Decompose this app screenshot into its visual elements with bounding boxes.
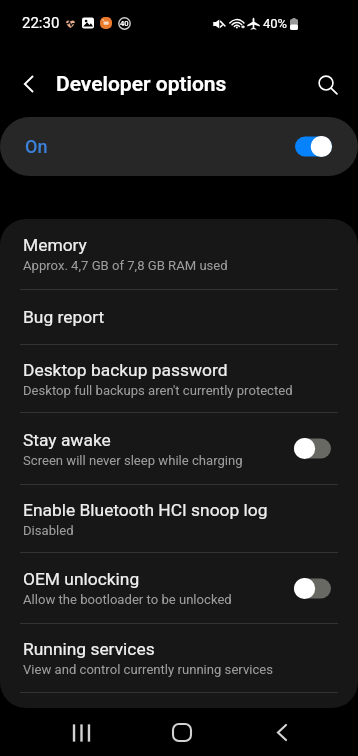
button[interactable]: OEM unlocking: [0, 553, 358, 623]
staticText: Memory: [23, 235, 87, 255]
staticText: Desktop full backups aren't currently pr…: [23, 383, 293, 398]
staticText: Running services: [23, 639, 155, 659]
button[interactable]: Navigate up: [9, 64, 49, 104]
button[interactable]: Desktop backup password: [0, 345, 358, 412]
staticText: View and control currently running servi…: [23, 662, 273, 677]
staticText: Allow the bootloader to be unlocked: [23, 592, 232, 607]
button[interactable]: Memory: [0, 219, 358, 289]
staticText: Developer options: [56, 72, 227, 97]
button[interactable]: Enable Bluetooth HCI snoop log: [0, 485, 358, 552]
button[interactable]: On: [0, 117, 358, 176]
staticText: 40%: [263, 16, 288, 31]
staticText: 40: [120, 19, 129, 28]
button[interactable]: Home: [152, 709, 212, 756]
staticText: Disabled: [23, 523, 74, 538]
staticText: Enable Bluetooth HCI snoop log: [23, 500, 268, 520]
staticText: Stay awake: [23, 430, 111, 450]
button[interactable]: Bug report: [0, 290, 358, 344]
staticText: 22:30: [22, 14, 60, 32]
staticText: OEM unlocking: [23, 569, 140, 589]
button[interactable]: Stay awake: [0, 413, 358, 484]
staticText: On: [25, 136, 48, 157]
button[interactable]: Recent apps: [51, 709, 111, 756]
staticText: Desktop backup password: [23, 360, 228, 380]
button[interactable]: Search: [305, 62, 349, 106]
button[interactable]: Back: [252, 709, 312, 756]
staticText: Bug report: [23, 307, 105, 327]
staticText: Screen will never sleep while charging: [23, 453, 243, 468]
button[interactable]: Running services: [0, 624, 358, 692]
staticText: Approx. 4,7 GB of 7,8 GB RAM used: [23, 258, 228, 273]
